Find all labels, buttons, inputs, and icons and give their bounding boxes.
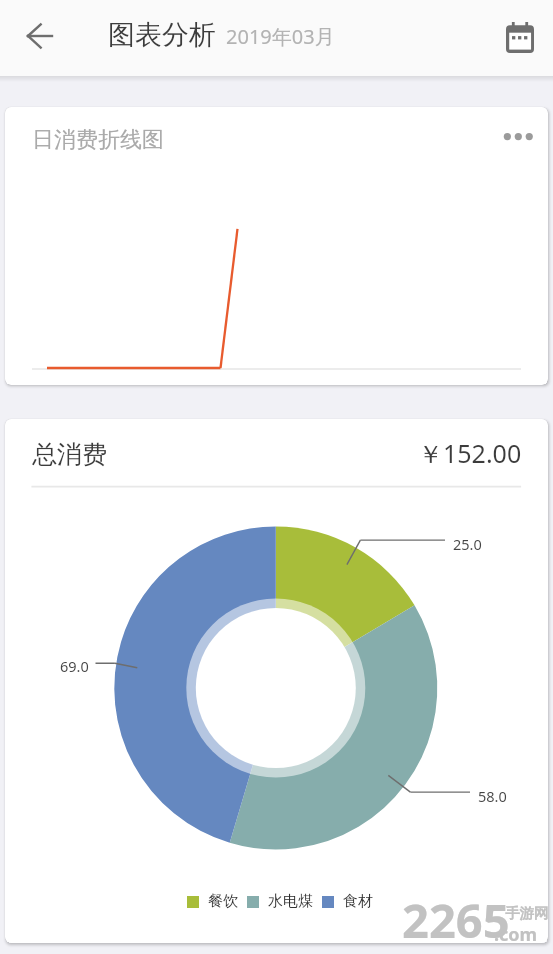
button[interactable]: Back [16,12,64,60]
staticText: 2019年03月 [226,23,335,50]
staticText: 日消费折线图 [32,126,164,154]
button[interactable]: 食材 [322,892,373,911]
staticText: 58.0 [478,786,507,806]
staticText: 餐饮 [208,892,238,911]
staticText: .com [494,922,538,943]
staticText: 69.0 [60,656,89,676]
staticText: 总消费 [32,439,107,470]
button[interactable]: 日消费折线图 [5,107,548,385]
staticText: 2265 [402,888,510,943]
staticText: 手游网 [505,904,548,922]
button[interactable]: More options [495,114,539,158]
staticText: 食材 [343,892,373,911]
button[interactable]: Select month [496,13,544,61]
staticText: 水电煤 [268,892,313,911]
button[interactable]: 水电煤 [247,892,313,911]
staticText: 图表分析 [108,18,216,52]
staticText: ￥152.00 [418,436,522,470]
staticText: 25.0 [453,534,482,554]
button[interactable]: 餐饮 [187,892,238,911]
